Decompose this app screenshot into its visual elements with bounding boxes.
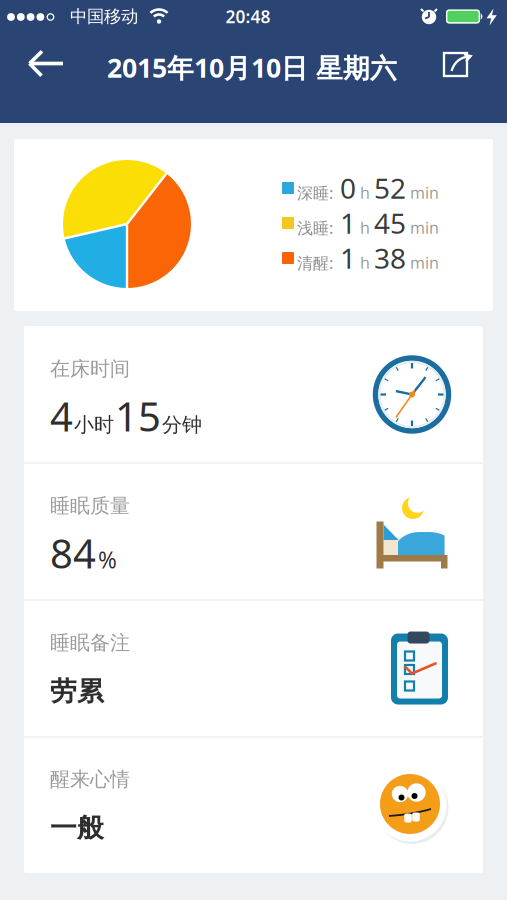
staticText: 20:48 [225, 5, 270, 28]
staticText: 1 [333, 204, 356, 242]
staticText: 清醒: [297, 252, 333, 273]
staticText: h [356, 217, 374, 238]
staticText: 中国移动 [70, 6, 138, 27]
staticText: 0 [333, 169, 356, 207]
staticText: h [356, 252, 374, 273]
staticText: 在床时间 [50, 356, 130, 381]
button[interactable]: 醒来心情 [24, 737, 483, 873]
staticText: % [98, 545, 117, 575]
staticText: min [406, 217, 439, 238]
staticText: min [406, 182, 439, 203]
staticText: 深睡: [297, 182, 333, 203]
button[interactable]: 睡眠备注 [24, 600, 483, 736]
button[interactable]: Share [436, 44, 478, 84]
staticText: min [406, 252, 439, 273]
staticText: 4 [50, 389, 73, 443]
staticText: 醒来心情 [50, 767, 130, 792]
staticText: h [356, 182, 374, 203]
button[interactable]: Back [24, 46, 68, 80]
staticText: 84 [50, 526, 96, 580]
staticText: 浅睡: [297, 217, 333, 238]
staticText: 15 [115, 389, 161, 443]
staticText: 38 [374, 239, 406, 277]
staticText: 52 [374, 169, 406, 207]
staticText: 睡眠质量 [50, 493, 130, 518]
button[interactable]: 睡眠质量 [24, 463, 483, 599]
staticText: 1 [333, 239, 356, 277]
staticText: 45 [374, 204, 406, 242]
staticText: 分钟 [162, 413, 202, 437]
staticText: 睡眠备注 [50, 630, 130, 655]
staticText: 劳累 [50, 675, 104, 708]
staticText: 2015年10月10日 星期六 [107, 50, 397, 85]
button[interactable]: 在床时间 [24, 326, 483, 462]
staticText: 小时 [74, 413, 114, 437]
staticText: 一般 [50, 811, 104, 844]
